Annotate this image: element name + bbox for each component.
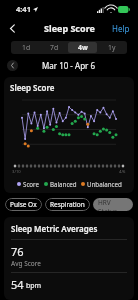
button[interactable]: HRV Status [93,198,133,211]
staticText: Respiration [50,200,85,209]
staticText: 54 [11,277,24,292]
staticText: Help [112,23,130,34]
staticText: 3/10 [12,169,21,175]
staticText: 7d [50,43,59,52]
staticText: Sleep Score [44,22,95,34]
button[interactable]: Pulse Ox [5,198,42,211]
staticText: 4w [78,43,88,52]
staticText: HRV Status [98,198,128,211]
staticText: Avg Score [11,259,41,268]
staticText: Mar 10 - Apr 6 [42,60,96,71]
button[interactable]: Help [110,21,132,36]
button[interactable]: 1y [97,42,126,53]
button[interactable]: 7d [40,42,68,53]
staticText: Score [23,180,40,188]
staticText: Sleep Metric Averages [11,223,98,234]
button[interactable]: 1d [12,42,40,53]
button[interactable]: Previous period [7,60,18,71]
staticText: 1y [108,43,116,52]
staticText: bpm [26,281,42,291]
button[interactable]: Respiration [45,198,90,211]
staticText: Unbalanced [87,180,122,188]
button[interactable]: 4w [68,42,97,53]
staticText: Sleep Score [10,82,55,93]
staticText: 4:41 [16,4,31,14]
staticText: Pulse Ox [10,200,37,209]
staticText: 76 [11,244,24,259]
staticText: 1d [22,43,31,52]
staticText: Balanced [50,180,77,188]
staticText: 4/6 [119,169,126,175]
button[interactable]: Back [3,19,21,37]
